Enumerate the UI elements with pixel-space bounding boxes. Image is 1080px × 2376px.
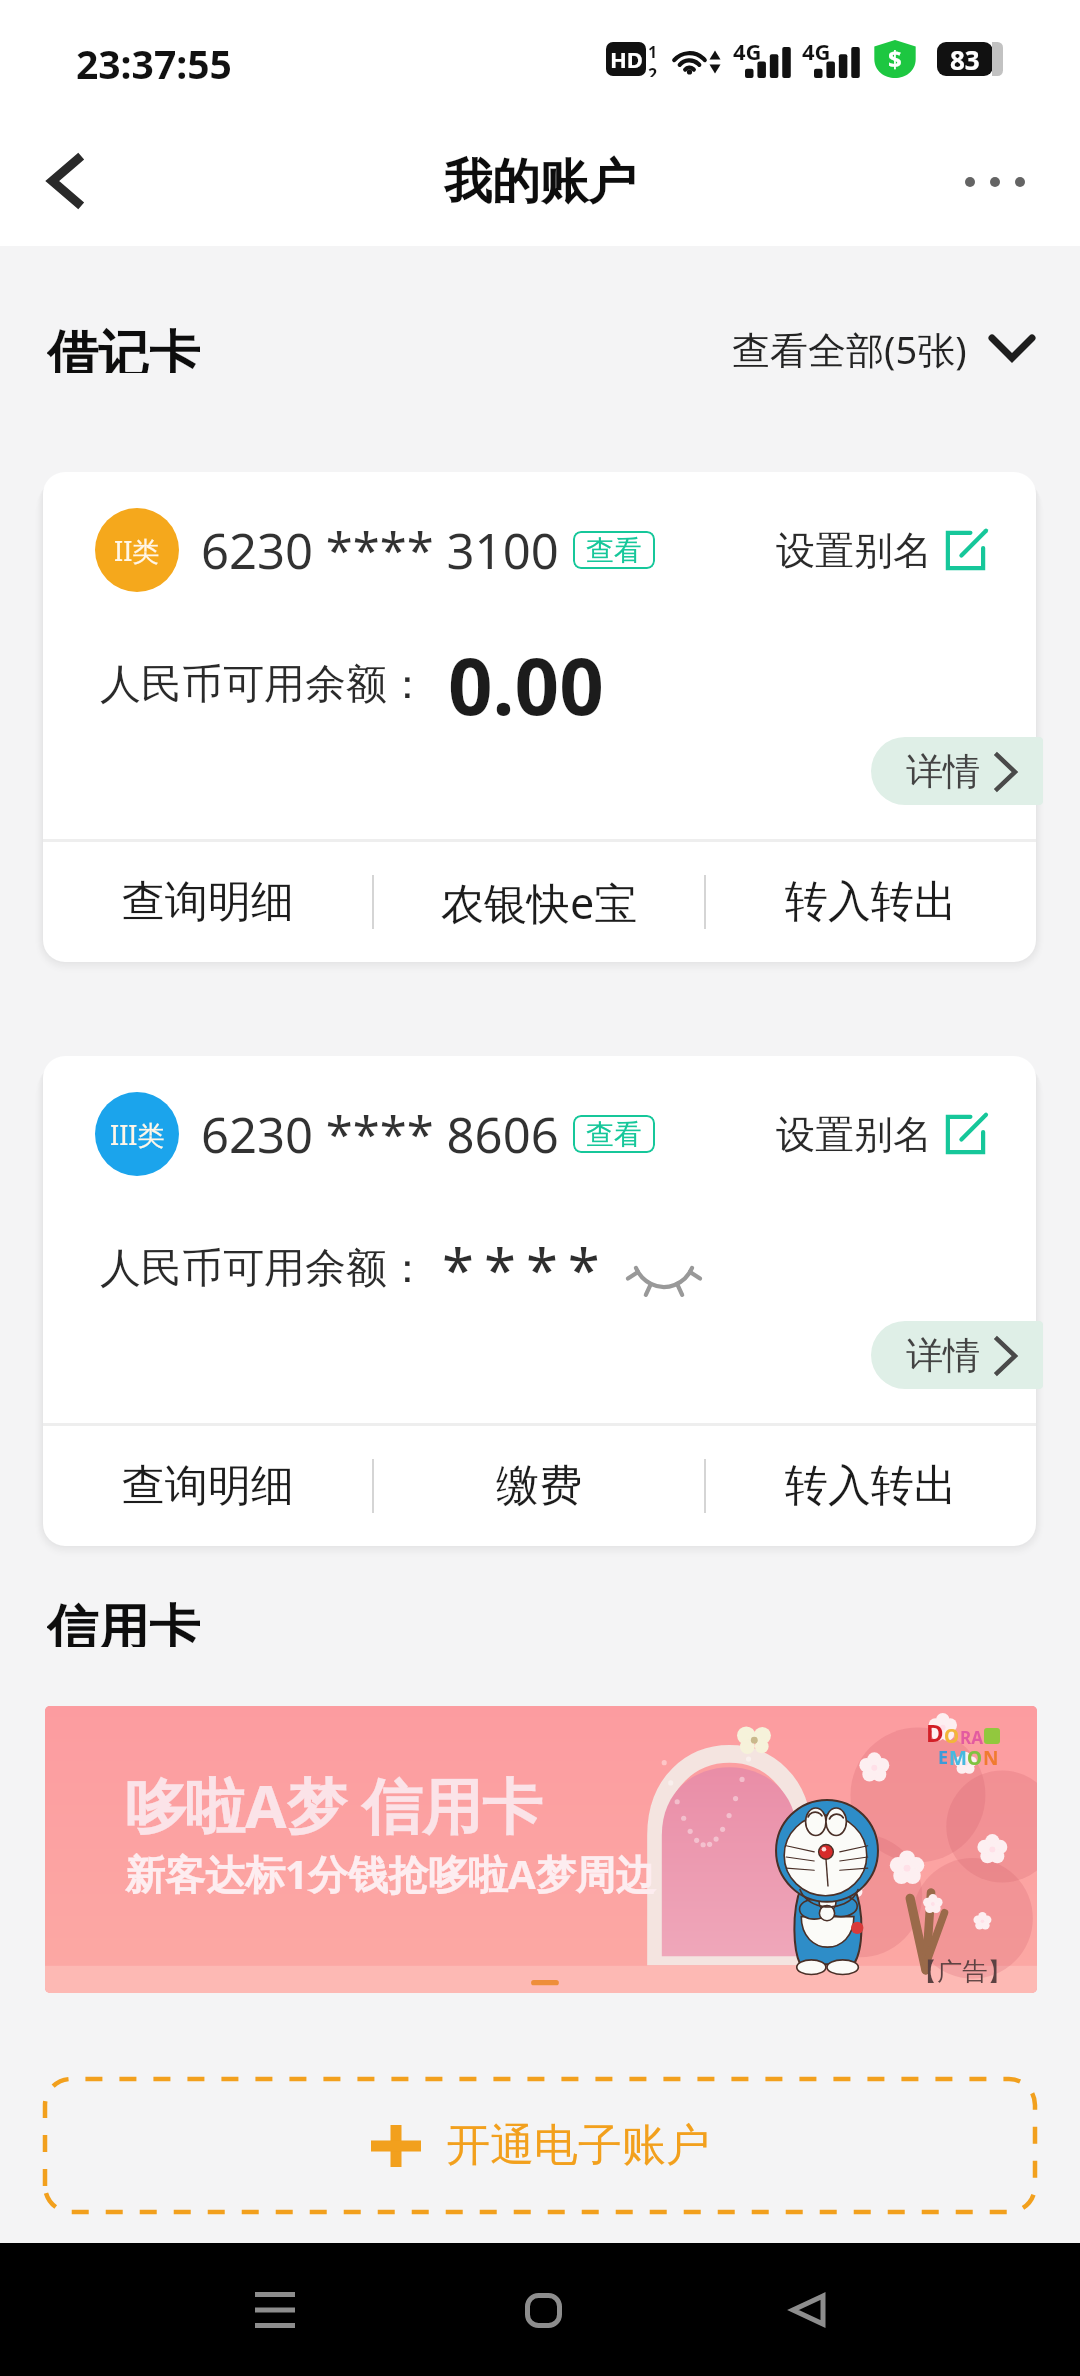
- staticText: ****: [442, 1230, 610, 1309]
- staticText: 查询明细: [122, 875, 294, 929]
- button[interactable]: 转入转出: [706, 842, 1036, 962]
- staticText: 设置别名: [776, 1110, 932, 1159]
- staticText: 6230 **** 3100: [201, 517, 559, 584]
- staticText: 信用卡: [47, 1597, 200, 1647]
- button[interactable]: 设置别名: [776, 526, 986, 575]
- staticText: 开通电子账户: [446, 2118, 710, 2173]
- staticText: N: [983, 1745, 999, 1771]
- staticText: E: [938, 1745, 949, 1770]
- staticText: RA: [960, 1726, 983, 1749]
- button[interactable]: 查看: [573, 1115, 655, 1153]
- staticText: 23:37:55: [76, 37, 232, 90]
- staticText: II类: [114, 532, 160, 569]
- staticText: D: [926, 1716, 944, 1749]
- button[interactable]: 详情: [871, 737, 1043, 805]
- staticText: 详情: [906, 748, 980, 795]
- button[interactable]: 设置别名: [776, 1110, 986, 1159]
- button[interactable]: Recent apps: [215, 2250, 335, 2370]
- staticText: 83: [950, 42, 980, 76]
- staticText: $: [888, 42, 902, 75]
- staticText: 转入转出: [785, 1459, 957, 1513]
- staticText: O: [944, 1723, 960, 1749]
- button[interactable]: 转入转出: [706, 1426, 1036, 1546]
- button[interactable]: 农银快e宝: [374, 842, 704, 962]
- button[interactable]: 缴费: [374, 1426, 704, 1546]
- button[interactable]: More options: [950, 110, 1080, 246]
- staticText: 设置别名: [776, 526, 932, 575]
- staticText: 4G: [802, 36, 831, 66]
- button[interactable]: Back: [748, 2250, 868, 2370]
- staticText: 转入转出: [785, 875, 957, 929]
- button[interactable]: 查看全部(5张): [732, 323, 1035, 373]
- button[interactable]: Home: [483, 2250, 603, 2370]
- staticText: HD: [610, 44, 643, 74]
- staticText: 人民币可用余额：: [100, 659, 428, 711]
- staticText: 0.00: [448, 632, 604, 738]
- button[interactable]: 详情: [871, 1321, 1043, 1389]
- staticText: III类: [110, 1116, 165, 1153]
- staticText: 新客达标1分钱抢哆啦A梦周边: [125, 1846, 656, 1901]
- staticText: 查看: [586, 1117, 642, 1152]
- staticText: 我的账户: [444, 152, 636, 212]
- staticText: 6230 **** 8606: [201, 1101, 559, 1168]
- staticText: 查询明细: [122, 1459, 294, 1513]
- button[interactable]: 查询明细: [43, 842, 372, 962]
- staticText: 详情: [906, 1332, 980, 1379]
- staticText: 查看全部(5张): [732, 323, 967, 373]
- staticText: 缴费: [496, 1459, 582, 1513]
- staticText: 4G: [733, 36, 762, 66]
- button[interactable]: Back: [0, 110, 130, 246]
- staticText: M: [949, 1745, 967, 1771]
- staticText: 【广告】: [912, 1956, 1012, 1987]
- staticText: 1: [648, 41, 658, 63]
- staticText: 借记卡: [47, 323, 200, 373]
- staticText: O: [967, 1745, 983, 1771]
- staticText: 人民币可用余额：: [100, 1243, 428, 1295]
- staticText: 2: [648, 63, 658, 77]
- button[interactable]: 开通电子账户: [43, 2077, 1037, 2214]
- staticText: 哆啦A梦 信用卡: [125, 1764, 543, 1846]
- staticText: 查看: [586, 533, 642, 568]
- button[interactable]: 查询明细: [43, 1426, 372, 1546]
- staticText: 农银快e宝: [441, 873, 638, 932]
- button[interactable]: 哆啦A梦 信用卡: [45, 1706, 1037, 1993]
- button[interactable]: 查看: [573, 531, 655, 569]
